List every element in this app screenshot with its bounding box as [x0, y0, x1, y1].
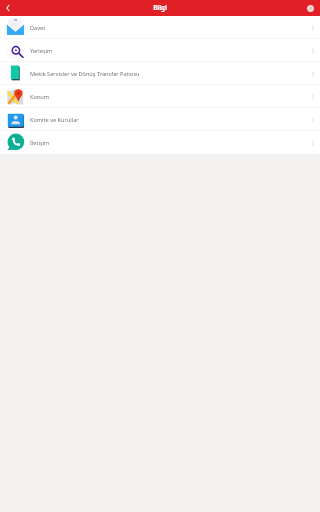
staticText: İletişim [30, 139, 307, 147]
button[interactable]: Mekik Servisler ve Dönüş Transfer Panosu [0, 62, 320, 85]
button[interactable]: Konum [0, 85, 320, 108]
staticText: Davet [30, 24, 307, 32]
staticText: Konum [30, 93, 307, 101]
button[interactable]: Back [0, 0, 16, 16]
button[interactable]: Yerleşim [0, 39, 320, 62]
button[interactable]: Komite ve Kurullar [0, 108, 320, 131]
staticText: Mekik Servisler ve Dönüş Transfer Panosu [30, 70, 307, 78]
staticText: Bilgi [153, 3, 167, 11]
button[interactable]: Davet [0, 16, 320, 39]
staticText: Yerleşim [30, 47, 307, 55]
staticText: Komite ve Kurullar [30, 116, 307, 124]
button[interactable]: İletişim [0, 131, 320, 154]
button[interactable]: Settings [304, 2, 316, 14]
